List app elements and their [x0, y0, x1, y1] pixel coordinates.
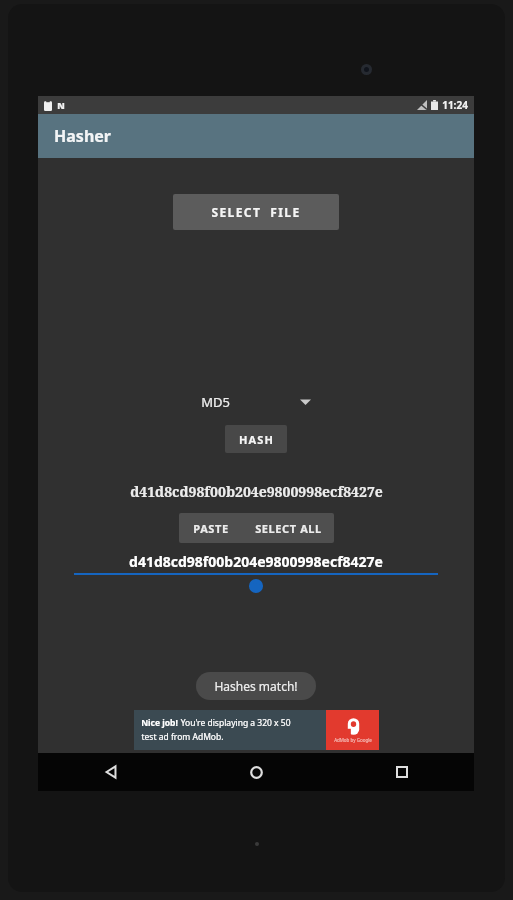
- staticText: HASH: [239, 432, 274, 447]
- button[interactable]: Home: [184, 753, 329, 791]
- staticText: d41d8cd98f00b204e9800998ecf8427e: [129, 552, 383, 571]
- staticText: Nice job!: [141, 717, 178, 729]
- staticText: Hashes match!: [214, 678, 298, 694]
- button[interactable]: HASH: [225, 425, 287, 453]
- button[interactable]: Hashes match!: [196, 672, 316, 700]
- staticText: N: [57, 99, 65, 111]
- staticText: MD5: [201, 393, 230, 411]
- button[interactable]: Nice job!: [134, 710, 379, 750]
- staticText: test ad from AdMob.: [141, 731, 224, 743]
- staticText: SELECT FILE: [211, 204, 301, 220]
- staticText: SELECT ALL: [255, 521, 322, 536]
- staticText: You're displaying a 320 x 50: [178, 717, 291, 729]
- staticText: d41d8cd98f00b204e9800998ecf8427e: [130, 482, 383, 501]
- button[interactable]: MD5: [201, 387, 311, 417]
- staticText: AdMob by Google: [334, 737, 372, 743]
- button[interactable]: SELECT FILE: [173, 194, 339, 230]
- staticText: Hasher: [54, 125, 111, 147]
- staticText: PASTE: [193, 521, 229, 536]
- button[interactable]: Recent apps: [329, 753, 474, 791]
- staticText: 11:24: [442, 98, 468, 112]
- button[interactable]: d41d8cd98f00b204e9800998ecf8427e: [74, 551, 438, 591]
- button[interactable]: PASTE: [179, 513, 243, 543]
- button[interactable]: Back: [38, 753, 184, 791]
- button[interactable]: SELECT ALL: [243, 513, 334, 543]
